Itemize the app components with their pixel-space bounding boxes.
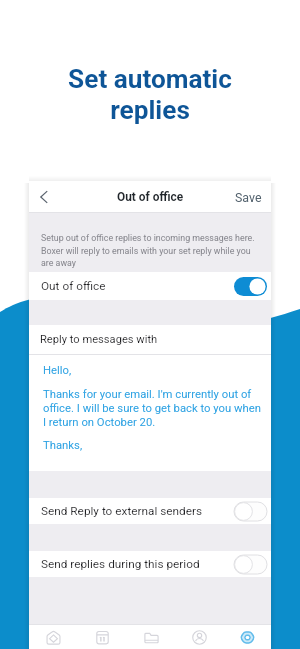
staticText: Hello, [43, 364, 72, 377]
staticText: Out of office [41, 279, 106, 293]
staticText: Save [235, 190, 262, 205]
button[interactable]: Save [226, 184, 271, 211]
staticText: Send Reply to external senders [41, 504, 203, 518]
button[interactable]: Reply to messages with [29, 325, 271, 354]
button[interactable]: Calendar [78, 624, 127, 649]
staticText: Setup out of office replies to incoming … [41, 233, 258, 268]
button[interactable]: Settings [223, 624, 271, 649]
staticText: Reply to messages with [40, 333, 158, 346]
button[interactable]: Files [127, 624, 175, 649]
button[interactable]: Contacts [175, 624, 223, 649]
button[interactable]: Send Reply to external senders [29, 498, 271, 524]
staticText: Thanks, [43, 439, 83, 452]
staticText: Thanks for your email. I'm currently out… [43, 388, 262, 428]
button[interactable]: Back [33, 186, 55, 208]
staticText: Send replies during this period [41, 557, 200, 571]
button[interactable]: Out of office [29, 272, 271, 300]
button[interactable]: Send replies during this period [29, 551, 271, 577]
button[interactable]: Mail [29, 624, 78, 649]
staticText: Set automatic replies [68, 64, 232, 125]
staticText: Out of office [117, 190, 184, 204]
